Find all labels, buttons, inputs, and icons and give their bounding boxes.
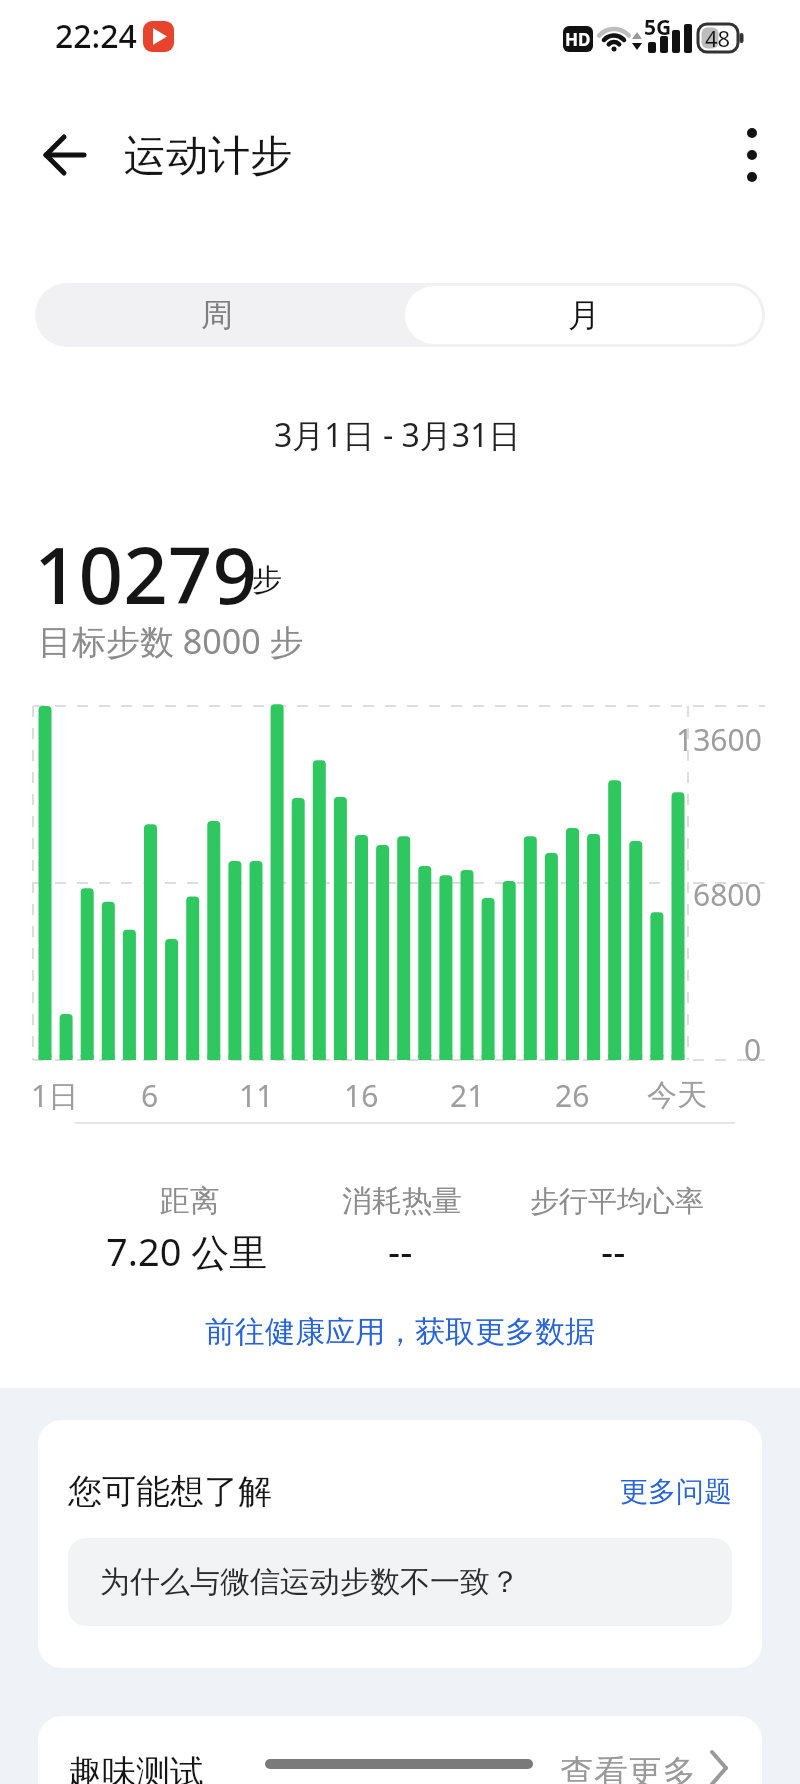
- staticText: 11: [239, 1075, 274, 1116]
- staticText: 今天: [647, 1076, 707, 1114]
- staticText: 22:24: [55, 14, 137, 58]
- button[interactable]: [38, 1716, 762, 1784]
- staticText: 目标步数 8000 步: [38, 618, 304, 664]
- button[interactable]: [400, 283, 765, 347]
- staticText: 21: [450, 1075, 485, 1116]
- staticText: 前往健康应用，获取更多数据: [205, 1313, 595, 1351]
- staticText: 消耗热量: [342, 1182, 462, 1220]
- staticText: 26: [555, 1075, 590, 1116]
- staticText: 3月1日 - 3月31日: [274, 413, 521, 457]
- staticText: 步行平均心率: [530, 1183, 704, 1220]
- staticText: 6: [141, 1075, 159, 1116]
- staticText: 16: [344, 1075, 379, 1116]
- staticText: 查看更多: [560, 1751, 696, 1784]
- staticText: HD: [565, 28, 591, 51]
- staticText: 48: [705, 23, 731, 53]
- staticText: 更多问题: [620, 1474, 732, 1509]
- staticText: 13600: [676, 719, 762, 760]
- button[interactable]: [30, 125, 100, 185]
- staticText: --: [601, 1225, 626, 1277]
- staticText: 10279: [34, 521, 258, 621]
- staticText: 月: [568, 295, 600, 335]
- staticText: 您可能想了解: [68, 1470, 272, 1513]
- button[interactable]: 更多问题: [600, 1462, 732, 1520]
- button[interactable]: [68, 1538, 732, 1626]
- staticText: 为什么与微信运动步数不一致？: [100, 1563, 520, 1601]
- staticText: 6800: [693, 874, 762, 915]
- button[interactable]: [35, 283, 400, 347]
- staticText: 0: [744, 1029, 762, 1070]
- staticText: 趣味测试: [68, 1751, 204, 1784]
- staticText: 5G: [644, 13, 672, 42]
- staticText: 7.20 公里: [106, 1225, 268, 1277]
- staticText: 运动计步: [124, 130, 292, 183]
- staticText: --: [388, 1225, 413, 1277]
- staticText: 1日: [31, 1075, 79, 1116]
- button[interactable]: [725, 125, 781, 185]
- staticText: 距离: [160, 1182, 220, 1220]
- button[interactable]: 前往健康应用，获取更多数据: [178, 1305, 622, 1359]
- staticText: 周: [201, 295, 233, 335]
- staticText: 步: [252, 561, 282, 599]
